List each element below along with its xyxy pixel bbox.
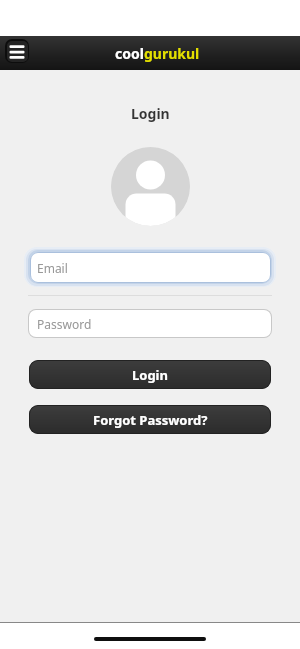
- staticText: Password: [37, 316, 92, 332]
- staticText: Email: [37, 260, 68, 276]
- button[interactable]: [5, 39, 29, 63]
- button[interactable]: Email: [31, 253, 270, 282]
- button[interactable]: Login: [29, 360, 271, 389]
- staticText: Login: [132, 366, 168, 384]
- staticText: Login: [131, 104, 170, 123]
- button[interactable]: Forgot Password?: [29, 405, 271, 434]
- staticText: Forgot Password?: [93, 411, 208, 429]
- button[interactable]: Password: [28, 309, 272, 338]
- staticText: gurukul: [144, 44, 200, 63]
- staticText: cool: [115, 44, 144, 63]
